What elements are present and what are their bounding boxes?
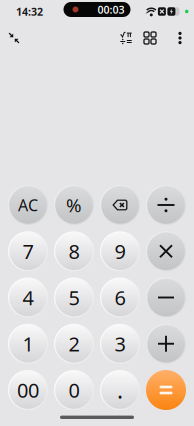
button[interactable]: 00 bbox=[8, 370, 48, 410]
button[interactable]: Plus bbox=[146, 324, 186, 364]
button[interactable]: Equals bbox=[146, 370, 186, 410]
button[interactable]: 6 bbox=[100, 277, 140, 317]
button[interactable]: 7 bbox=[8, 231, 48, 271]
staticText: 5 bbox=[68, 284, 79, 311]
staticText: 14:32 bbox=[16, 4, 43, 19]
staticText: % bbox=[66, 193, 82, 217]
staticText: 3 bbox=[114, 330, 125, 357]
button[interactable]: More options bbox=[173, 27, 187, 49]
staticText: 00 bbox=[17, 377, 39, 403]
button[interactable]: 1 bbox=[8, 324, 48, 364]
staticText: . bbox=[117, 375, 123, 405]
button[interactable]: Collapse bbox=[2, 27, 26, 49]
button[interactable]: AC bbox=[8, 185, 48, 225]
staticText: 4 bbox=[22, 284, 33, 311]
button[interactable]: Unit converter bbox=[139, 27, 161, 49]
button[interactable]: 8 bbox=[54, 231, 94, 271]
button[interactable]: Minus bbox=[146, 277, 186, 317]
button[interactable]: Scientific bbox=[115, 27, 137, 49]
staticText: 9 bbox=[114, 238, 125, 265]
button[interactable]: Backspace bbox=[100, 185, 140, 225]
staticText: 0 bbox=[68, 377, 79, 403]
button[interactable]: 3 bbox=[100, 324, 140, 364]
staticText: 6 bbox=[114, 284, 125, 311]
staticText: 7 bbox=[22, 238, 33, 265]
button[interactable]: . bbox=[100, 370, 140, 410]
staticText: 00:03 bbox=[97, 2, 124, 17]
button[interactable]: 4 bbox=[8, 277, 48, 317]
button[interactable]: Multiply bbox=[146, 231, 186, 271]
staticText: 2 bbox=[68, 330, 79, 357]
button[interactable]: 2 bbox=[54, 324, 94, 364]
staticText: 8 bbox=[68, 238, 79, 265]
staticText: 1 bbox=[22, 330, 33, 357]
staticText: AC bbox=[18, 194, 38, 216]
button[interactable]: 0 bbox=[54, 370, 94, 410]
button[interactable]: 9 bbox=[100, 231, 140, 271]
button[interactable]: % bbox=[54, 185, 94, 225]
button[interactable]: Divide bbox=[146, 185, 186, 225]
button[interactable]: 5 bbox=[54, 277, 94, 317]
